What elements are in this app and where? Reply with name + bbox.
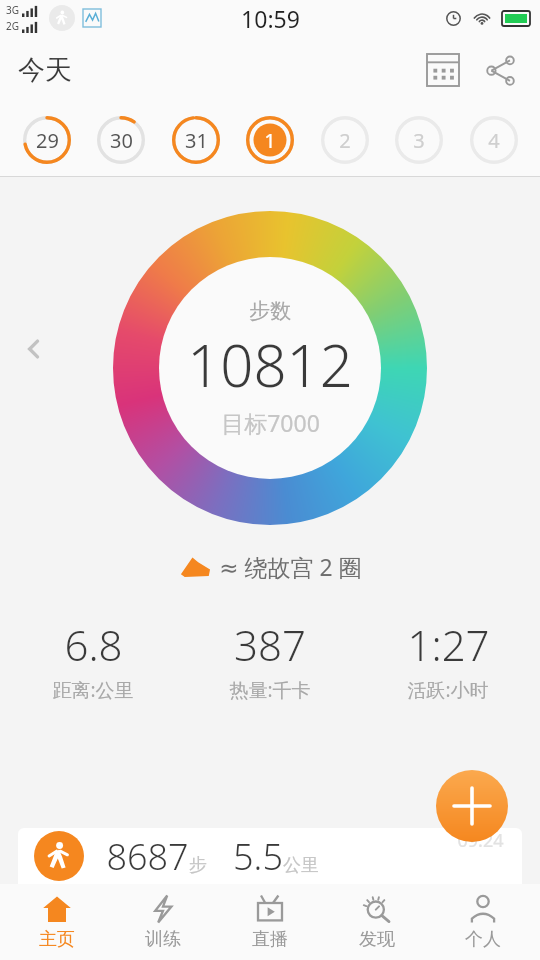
staticText: ≈ 绕故宫 2 圈	[219, 551, 362, 582]
staticText: 10812	[187, 325, 353, 404]
staticText: 1:27	[407, 616, 490, 673]
staticText: 目标7000	[221, 407, 320, 438]
staticText: 直播	[252, 928, 288, 951]
staticText: 1	[264, 127, 276, 154]
button[interactable]: 387	[185, 616, 355, 703]
staticText: 09:24	[457, 828, 504, 853]
staticText: 2	[339, 127, 351, 154]
staticText: 步	[189, 854, 207, 877]
staticText: 主页	[39, 928, 75, 951]
staticText: 6.8	[64, 616, 123, 673]
staticText: 热量:千卡	[229, 677, 311, 703]
button[interactable]: 个人	[433, 894, 533, 951]
staticText: 今天	[18, 53, 72, 87]
button[interactable]: Share	[476, 45, 526, 95]
staticText: 10:59	[241, 3, 300, 34]
button[interactable]: Add activity	[436, 770, 508, 842]
staticText: 387	[234, 616, 306, 673]
button[interactable]: 30	[93, 112, 149, 168]
button[interactable]: 1	[242, 112, 298, 168]
button[interactable]: Previous day	[12, 327, 56, 371]
staticText: 8687	[106, 832, 189, 881]
staticText: 活跃:小时	[407, 677, 489, 703]
button[interactable]: 发现	[327, 894, 427, 951]
staticText: 30	[110, 127, 133, 154]
staticText: 训练	[145, 928, 181, 951]
button[interactable]: 6.8	[8, 616, 178, 703]
button[interactable]: 直播	[220, 894, 320, 951]
staticText: 31	[185, 127, 208, 154]
staticText: 步数	[249, 298, 291, 324]
button[interactable]: Calendar	[418, 45, 468, 95]
button[interactable]: 29	[19, 112, 75, 168]
staticText: 公里	[283, 854, 319, 877]
staticText: 29	[36, 127, 59, 154]
staticText: 4	[488, 127, 500, 154]
staticText: 发现	[359, 928, 395, 951]
button[interactable]: 训练	[113, 894, 213, 951]
button[interactable]: 8687	[18, 828, 522, 884]
staticText: 距离:公里	[52, 677, 134, 703]
button[interactable]: 主页	[7, 894, 107, 951]
staticText: 3	[413, 127, 425, 154]
button[interactable]: 1:27	[363, 616, 533, 703]
staticText: 5.5	[233, 832, 283, 881]
staticText: 个人	[465, 928, 501, 951]
staticText: 2G	[6, 19, 19, 33]
button[interactable]: 3	[391, 112, 447, 168]
button[interactable]: 31	[168, 112, 224, 168]
button[interactable]: 4	[466, 112, 522, 168]
staticText: 3G	[6, 3, 19, 17]
button[interactable]: 2	[317, 112, 373, 168]
